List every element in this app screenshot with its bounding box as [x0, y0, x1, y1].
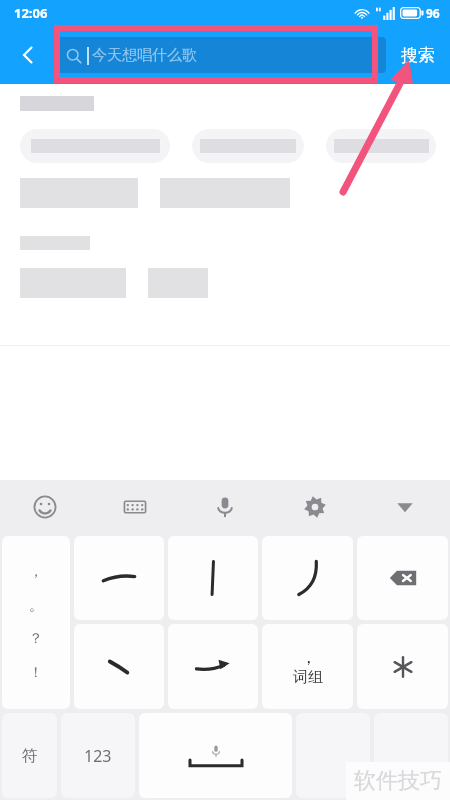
- button[interactable]: Emoji: [0, 480, 90, 534]
- button[interactable]: Enter: [374, 713, 448, 798]
- button[interactable]: Space: [139, 713, 292, 798]
- staticText: 符: [22, 746, 38, 766]
- staticText: 。: [29, 597, 43, 615]
- button[interactable]: Punctuation: [2, 536, 70, 709]
- staticText: ！: [29, 664, 43, 682]
- button[interactable]: Phrase: [262, 624, 353, 709]
- button[interactable]: Settings: [270, 480, 360, 534]
- button[interactable]: Stroke key: [168, 536, 258, 620]
- button[interactable]: Stroke key: [168, 624, 258, 709]
- button[interactable]: 今天想唱什么歌: [56, 37, 386, 73]
- staticText: ，: [300, 647, 317, 668]
- button[interactable]: 搜索: [386, 26, 450, 84]
- staticText: 搜索: [401, 45, 435, 66]
- button[interactable]: Back: [0, 26, 56, 84]
- staticText: 今天想唱什么歌: [92, 46, 197, 65]
- staticText: ？: [29, 630, 43, 648]
- button[interactable]: Hide keyboard: [360, 480, 450, 534]
- button[interactable]: Numbers: [61, 713, 135, 798]
- button[interactable]: Symbols: [2, 713, 57, 798]
- button[interactable]: Stroke key: [74, 624, 164, 709]
- button[interactable]: [20, 129, 170, 163]
- staticText: 12:06: [14, 4, 48, 22]
- button[interactable]: Stroke key: [74, 536, 164, 620]
- staticText: 软件技巧: [354, 767, 442, 795]
- button[interactable]: Delete: [357, 536, 448, 620]
- staticText: ，: [29, 563, 43, 581]
- button[interactable]: More: [296, 713, 370, 798]
- staticText: 123: [84, 745, 112, 767]
- staticText: 词组: [293, 668, 323, 687]
- button[interactable]: [192, 129, 304, 163]
- staticText: 96: [426, 5, 440, 21]
- button[interactable]: Wildcard: [357, 624, 448, 709]
- button[interactable]: Stroke key: [262, 536, 353, 620]
- button[interactable]: Voice input: [180, 480, 270, 534]
- button[interactable]: Keyboard layout: [90, 480, 180, 534]
- button[interactable]: [326, 129, 436, 163]
